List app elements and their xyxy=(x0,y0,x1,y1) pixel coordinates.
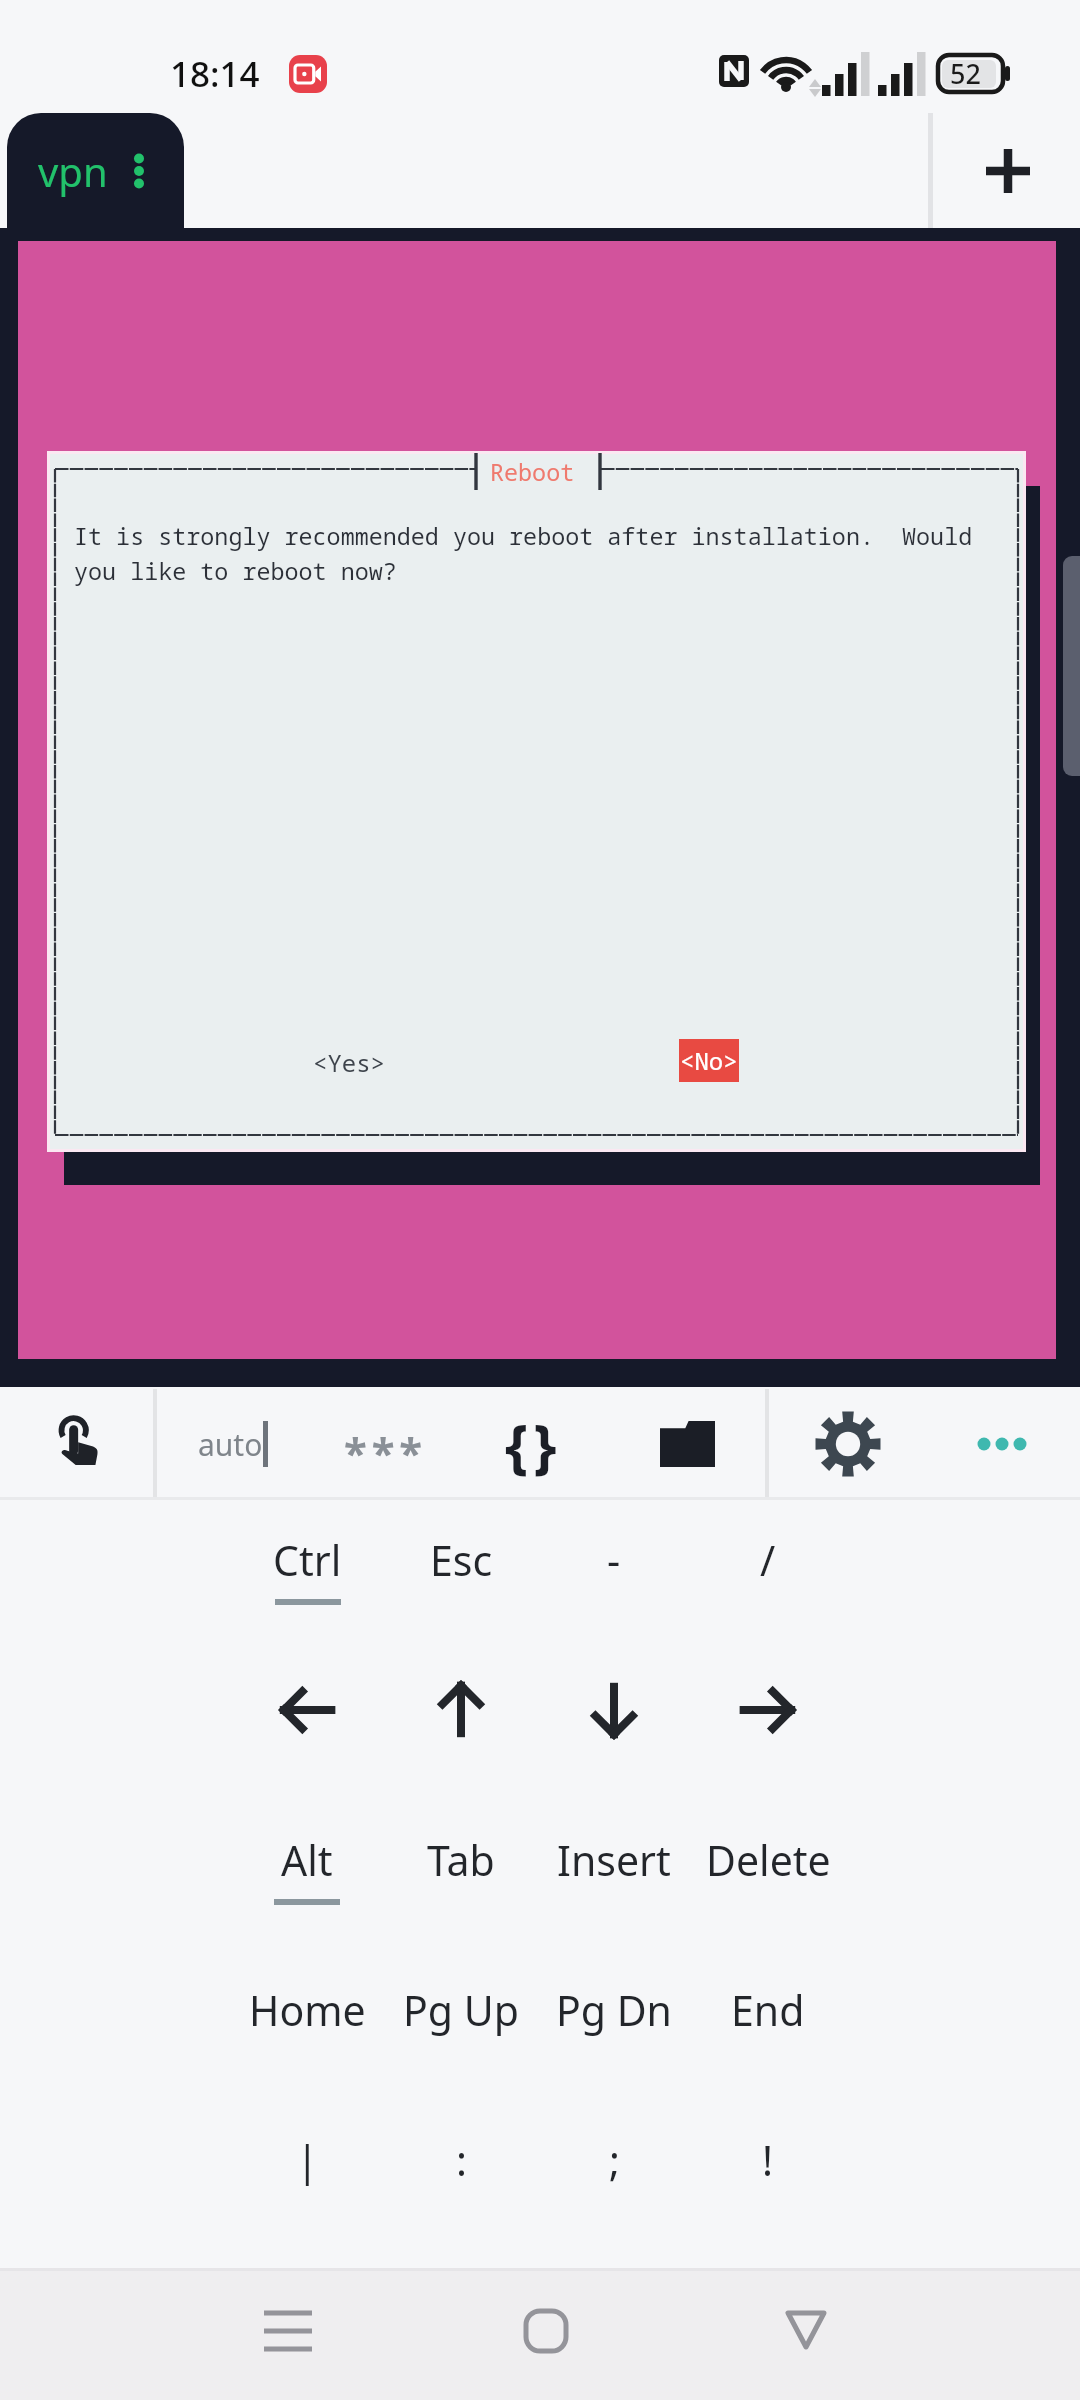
staticText: Esc xyxy=(430,1532,493,1588)
staticText: Pg Up xyxy=(403,1982,519,2038)
button[interactable]: | xyxy=(227,2100,387,2220)
staticText: Tab xyxy=(427,1832,495,1888)
staticText: 52 xyxy=(950,55,981,92)
button[interactable]: Toggle touch keyboard xyxy=(0,1387,155,1500)
button[interactable]: - xyxy=(534,1500,694,1620)
button[interactable]: Left xyxy=(227,1650,387,1770)
staticText: Insert xyxy=(557,1832,671,1888)
button[interactable]: Settings xyxy=(769,1387,927,1500)
button[interactable]: Home xyxy=(227,1950,387,2070)
button[interactable]: Up xyxy=(381,1650,541,1770)
button[interactable]: Delete xyxy=(688,1800,848,1920)
button[interactable]: Pg Dn xyxy=(534,1950,694,2070)
staticText: <No> xyxy=(680,1044,738,1077)
staticText: ! xyxy=(762,2132,774,2188)
button[interactable]: Home xyxy=(476,2265,616,2397)
staticText: - xyxy=(607,1532,621,1588)
button[interactable]: Back xyxy=(736,2264,876,2396)
staticText: End xyxy=(731,1982,805,2038)
button[interactable]: New session xyxy=(944,113,1072,228)
button[interactable]: ! xyxy=(688,2100,848,2220)
button[interactable]: vpn xyxy=(7,113,184,228)
button[interactable]: Alt xyxy=(227,1800,387,1920)
staticText: <Yes> xyxy=(313,1046,385,1079)
button[interactable]: Tab xyxy=(381,1800,541,1920)
staticText: {} xyxy=(505,1404,562,1484)
button[interactable]: Autocomplete xyxy=(157,1387,309,1500)
button[interactable]: Insert xyxy=(534,1800,694,1920)
staticText: 18:14 xyxy=(170,50,260,98)
staticText: Alt xyxy=(281,1832,333,1888)
button[interactable]: Down xyxy=(534,1650,694,1770)
staticText: It is strongly recommended you reboot af… xyxy=(74,520,973,587)
staticText: Ctrl xyxy=(273,1532,342,1588)
staticText: Delete xyxy=(706,1832,831,1888)
staticText: ; xyxy=(609,2132,620,2188)
staticText: vpn xyxy=(38,144,108,198)
button[interactable]: Files xyxy=(611,1387,763,1500)
button[interactable]: ; xyxy=(534,2100,694,2220)
staticText: | xyxy=(296,2132,319,2188)
button[interactable]: More options xyxy=(927,1387,1077,1500)
staticText: : xyxy=(456,2132,467,2188)
staticText: * * * xyxy=(344,1423,420,1480)
staticText: auto xyxy=(198,1424,263,1465)
button[interactable]: Esc xyxy=(381,1500,541,1620)
button[interactable]: <Yes> xyxy=(313,1046,385,1079)
button[interactable]: Recents xyxy=(218,2265,358,2397)
button[interactable]: : xyxy=(381,2100,541,2220)
staticText: Home xyxy=(249,1982,366,2038)
staticText: / xyxy=(760,1532,776,1588)
button[interactable]: Special characters xyxy=(309,1387,455,1500)
button[interactable]: Braces xyxy=(455,1387,611,1500)
staticText: Reboot xyxy=(490,456,575,488)
button[interactable]: End xyxy=(688,1950,848,2070)
button[interactable]: <No> xyxy=(680,1044,738,1077)
button[interactable]: Pg Up xyxy=(381,1950,541,2070)
button[interactable]: Ctrl xyxy=(227,1500,387,1620)
button[interactable]: / xyxy=(688,1500,848,1620)
button[interactable]: Right xyxy=(688,1650,848,1770)
staticText: Pg Dn xyxy=(556,1982,672,2038)
